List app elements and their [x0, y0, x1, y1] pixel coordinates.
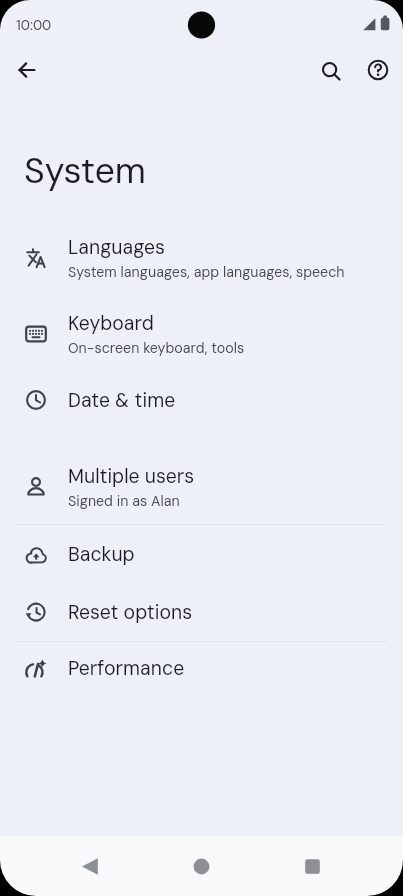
button[interactable] [188, 856, 216, 884]
staticText: Multiple users [68, 464, 195, 489]
staticText: 10:00 [16, 16, 52, 34]
staticText: Signed in as Alan [68, 492, 180, 510]
button[interactable]: Multiple users [0, 449, 403, 524]
staticText: Performance [68, 656, 185, 681]
button[interactable] [366, 58, 390, 82]
button[interactable] [319, 59, 343, 83]
staticText: Reset options [68, 600, 193, 625]
staticText: Backup [68, 542, 135, 567]
button[interactable]: Languages [0, 220, 403, 296]
staticText: Languages [68, 235, 165, 260]
staticText: Date & time [68, 388, 176, 413]
button[interactable]: Backup [0, 526, 403, 583]
staticText: On-screen keyboard, tools [68, 339, 245, 357]
button[interactable]: Performance [0, 642, 403, 695]
button[interactable] [299, 856, 327, 884]
button[interactable]: Keyboard [0, 296, 403, 372]
staticText: System languages, app languages, speech [68, 263, 345, 281]
button[interactable] [15, 58, 39, 82]
button[interactable]: Date & time [0, 372, 403, 428]
button[interactable]: Reset options [0, 583, 403, 641]
button[interactable] [78, 856, 106, 884]
staticText: Keyboard [68, 311, 154, 336]
staticText: System [24, 148, 147, 194]
